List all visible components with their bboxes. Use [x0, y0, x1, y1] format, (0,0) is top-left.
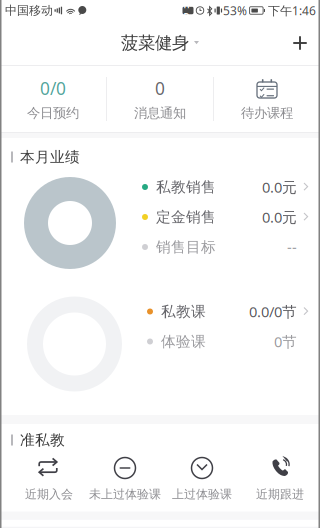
staticText: 私教课: [161, 302, 206, 320]
button[interactable]: 0/0: [0, 66, 106, 132]
staticText: 0: [155, 77, 165, 100]
staticText: 中国移动: [5, 3, 53, 18]
button[interactable]: 菠菜健身: [121, 21, 199, 65]
staticText: 上过体验课: [172, 487, 232, 502]
staticText: 待办课程: [241, 105, 293, 121]
staticText: 未上过体验课: [89, 487, 161, 502]
button[interactable]: 添加: [280, 21, 320, 65]
button[interactable]: 体验课: [147, 326, 308, 356]
staticText: 消息通知: [134, 105, 186, 121]
button[interactable]: 近期入会: [11, 456, 87, 502]
staticText: 下午1:46: [268, 2, 316, 18]
staticText: 体验课: [161, 332, 206, 350]
button[interactable]: 销售目标: [142, 232, 308, 262]
staticText: 0.0元: [262, 207, 297, 227]
staticText: 53%: [223, 2, 247, 18]
staticText: 0.0/0节: [249, 302, 297, 321]
staticText: 销售目标: [156, 238, 216, 256]
staticText: 本月业绩: [20, 148, 80, 166]
button[interactable]: 私教课: [147, 296, 308, 326]
staticText: 近期入会: [25, 487, 73, 502]
button[interactable]: 定金销售: [142, 202, 308, 232]
staticText: 0节: [274, 332, 297, 351]
staticText: 私教销售: [156, 178, 216, 196]
button[interactable]: 0: [107, 66, 213, 132]
button[interactable]: 未上过体验课: [87, 456, 163, 502]
button[interactable]: 私教销售: [142, 172, 308, 202]
staticText: 0/0: [40, 77, 66, 100]
staticText: 近期跟进: [256, 487, 304, 502]
staticText: 菠菜健身: [121, 32, 189, 54]
staticText: 0.0元: [262, 177, 297, 197]
staticText: --: [287, 237, 297, 257]
button[interactable]: 近期跟进: [241, 456, 319, 502]
button[interactable]: 上过体验课: [163, 456, 241, 502]
staticText: HD: [183, 0, 192, 21]
button[interactable]: 待办课程: [214, 66, 320, 132]
staticText: 今日预约: [27, 105, 79, 121]
staticText: 定金销售: [156, 208, 216, 226]
staticText: 准私教: [20, 431, 65, 449]
